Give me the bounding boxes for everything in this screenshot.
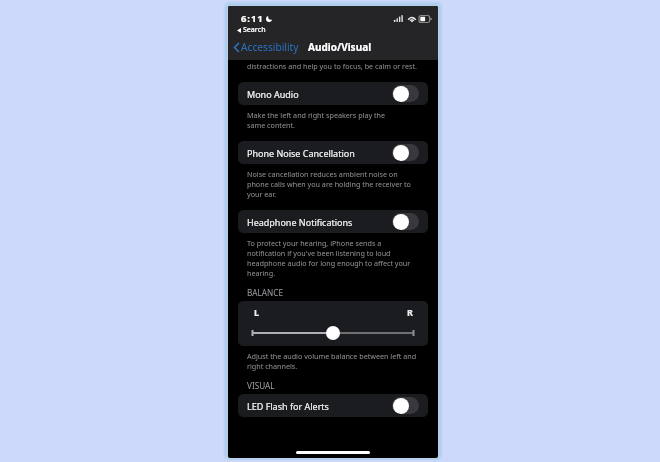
button[interactable]: Toggle <box>392 397 419 414</box>
staticText: Noise cancellation reduces ambient noise… <box>247 169 411 199</box>
staticText: To protect your hearing, iPhone sends a … <box>247 238 411 278</box>
staticText: Phone Noise Cancellation <box>247 147 355 159</box>
staticText: 6:11 <box>241 12 264 25</box>
staticText: Audio/Visual <box>308 40 372 54</box>
staticText: VISUAL <box>247 380 275 391</box>
staticText: R <box>407 306 413 318</box>
staticText: Search <box>243 25 266 35</box>
button[interactable]: LED Flash for Alerts <box>238 394 428 417</box>
staticText: LED Flash for Alerts <box>247 400 329 412</box>
button[interactable]: Search <box>237 25 266 35</box>
staticText: Headphone Notifications <box>247 216 353 228</box>
staticText: Mono Audio <box>247 88 299 100</box>
button[interactable]: Headphone Notifications <box>238 210 428 233</box>
staticText: Accessibility <box>241 40 299 54</box>
button[interactable]: Phone Noise Cancellation <box>238 141 428 164</box>
button[interactable]: Toggle <box>392 85 419 102</box>
button[interactable]: Accessibility <box>233 40 299 54</box>
staticText: distractions and help you to focus, be c… <box>247 61 417 71</box>
button[interactable]: Toggle <box>392 213 419 230</box>
staticText: BALANCE <box>247 287 284 298</box>
staticText: Make the left and right speakers play th… <box>247 110 386 130</box>
button[interactable]: Mono Audio <box>238 82 428 105</box>
button[interactable]: Toggle <box>392 144 419 161</box>
button[interactable] <box>251 325 415 341</box>
staticText: Adjust the audio volume balance between … <box>247 351 424 371</box>
staticText: L <box>254 306 260 318</box>
